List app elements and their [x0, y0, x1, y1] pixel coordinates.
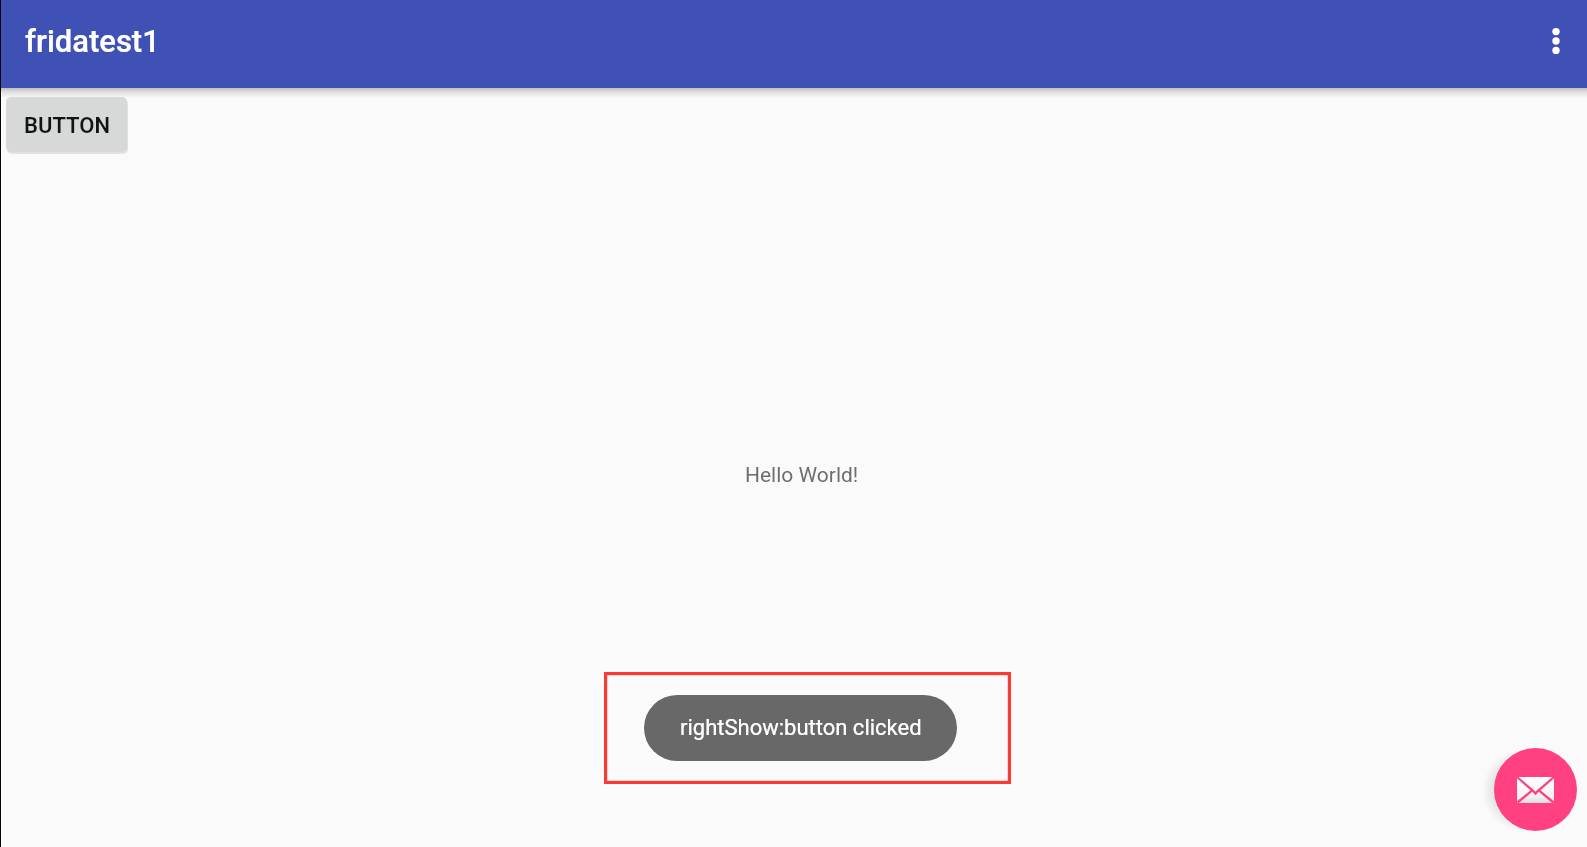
button[interactable]: Compose email	[1494, 748, 1577, 831]
button[interactable]: BUTTON	[6, 97, 127, 152]
staticText: rightShow:button clicked	[680, 715, 922, 741]
staticText: fridatest1	[25, 23, 160, 59]
staticText: BUTTON	[24, 113, 111, 139]
button[interactable]: More options	[1525, 14, 1585, 74]
staticText: Hello World!	[745, 463, 859, 488]
